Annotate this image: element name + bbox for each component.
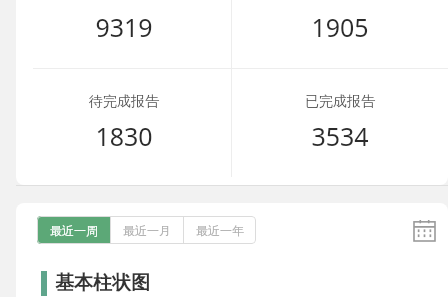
button[interactable]: 待完成报告 xyxy=(16,69,231,177)
staticText: 已完成报告 xyxy=(305,93,375,111)
button[interactable]: 最近一月 xyxy=(111,216,183,244)
button[interactable]: 总任务数 xyxy=(16,0,231,68)
staticText: 最近一年 xyxy=(196,223,244,238)
button[interactable]: 已完成报告 xyxy=(232,69,448,177)
staticText: 最近一周 xyxy=(50,223,98,238)
staticText: 1905 xyxy=(311,10,369,44)
staticText: 3534 xyxy=(311,119,369,153)
button[interactable]: 最近一年 xyxy=(184,216,256,244)
staticText: 待完成报告 xyxy=(89,93,159,111)
staticText: 9319 xyxy=(95,10,153,44)
staticText: 最近一月 xyxy=(123,223,171,238)
button[interactable]: 最近一周 xyxy=(37,216,110,244)
staticText: 1830 xyxy=(95,119,153,153)
staticText: 基本柱状图 xyxy=(55,271,150,295)
button[interactable]: 待处理任务 xyxy=(232,0,448,68)
button[interactable]: Select date range xyxy=(407,216,441,244)
